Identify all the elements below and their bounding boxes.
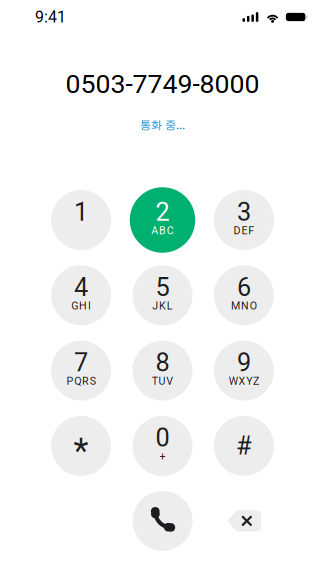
staticText: JKL	[152, 299, 173, 312]
button[interactable]: 1	[47, 186, 115, 254]
button[interactable]: 7	[47, 337, 115, 405]
staticText: 9:41	[35, 8, 66, 26]
staticText: 8	[155, 348, 169, 377]
staticText: 통화 중...	[140, 118, 185, 132]
button[interactable]: 0	[128, 412, 196, 480]
staticText: GHI	[71, 299, 91, 312]
staticText: 7	[74, 348, 88, 377]
staticText: PQRS	[66, 375, 96, 387]
staticText: 3	[237, 197, 251, 227]
staticText: 6	[237, 272, 251, 302]
staticText: 0503-7749-8000	[65, 68, 259, 100]
button[interactable]: Delete	[222, 506, 266, 536]
staticText: MNO	[231, 299, 257, 312]
staticText: *	[74, 431, 89, 471]
button[interactable]: Star	[47, 412, 115, 480]
button[interactable]: 3	[210, 186, 278, 254]
staticText: TUV	[152, 375, 173, 387]
staticText: DEF	[234, 224, 254, 237]
staticText: ABC	[151, 224, 174, 237]
button[interactable]: Call	[128, 487, 196, 555]
staticText: #	[236, 431, 252, 461]
button[interactable]: 8	[128, 337, 196, 405]
button[interactable]: 6	[210, 261, 278, 329]
staticText: 4	[74, 272, 88, 302]
button[interactable]: 4	[47, 261, 115, 329]
button[interactable]: 5	[128, 261, 196, 329]
staticText: 1	[74, 197, 88, 227]
staticText: 2	[155, 197, 169, 227]
staticText: WXYZ	[229, 375, 259, 387]
staticText: 9	[237, 348, 251, 377]
button[interactable]: 2	[128, 186, 196, 254]
button[interactable]: Pound	[210, 412, 278, 480]
staticText: 0	[155, 423, 169, 453]
staticText: 5	[155, 272, 169, 302]
button[interactable]: 9	[210, 337, 278, 405]
staticText: +	[159, 450, 165, 463]
